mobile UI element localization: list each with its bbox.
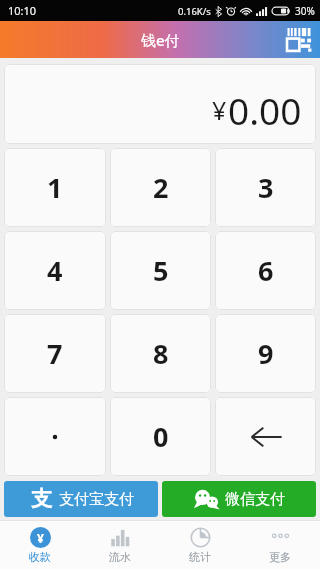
staticText: 流水	[109, 550, 131, 564]
button[interactable]: Scan QR code	[284, 25, 314, 55]
button[interactable]: 9	[215, 314, 316, 393]
button[interactable]: 0	[110, 397, 211, 476]
staticText: 支	[31, 486, 52, 512]
button[interactable]	[4, 397, 106, 476]
button[interactable]: ¥	[0, 521, 80, 569]
button[interactable]: 1	[4, 148, 106, 227]
staticText: 6	[258, 252, 274, 289]
staticText: 收款	[29, 550, 51, 564]
staticText: 钱e付	[141, 30, 180, 50]
button[interactable]: 4	[4, 231, 106, 310]
button[interactable]: 7	[4, 314, 106, 393]
staticText: 1	[47, 169, 63, 206]
staticText: ¥	[37, 530, 44, 546]
staticText: 8	[153, 335, 169, 372]
button[interactable]: 流水	[80, 521, 160, 569]
button[interactable]: 8	[110, 314, 211, 393]
staticText: 0	[153, 418, 169, 455]
button[interactable]: Backspace	[215, 397, 316, 476]
staticText: 0.16K/s	[178, 5, 211, 18]
staticText: 5	[153, 252, 169, 289]
staticText: 10:10	[8, 3, 37, 18]
button[interactable]: 6	[215, 231, 316, 310]
staticText: 支付宝支付	[59, 490, 134, 509]
button[interactable]: 3	[215, 148, 316, 227]
staticText: ¥	[212, 93, 227, 127]
staticText: 统计	[189, 550, 211, 564]
button[interactable]: 2	[110, 148, 211, 227]
staticText: 4	[47, 252, 63, 289]
staticText: 微信支付	[225, 490, 285, 509]
staticText: 3	[258, 169, 274, 206]
button[interactable]: 更多	[240, 521, 320, 569]
button[interactable]: 统计	[160, 521, 240, 569]
button[interactable]: 微信支付	[162, 481, 316, 517]
button[interactable]: 5	[110, 231, 211, 310]
staticText: 30%	[295, 4, 315, 18]
staticText: 更多	[269, 550, 291, 564]
staticText: 9	[258, 335, 274, 372]
button[interactable]: 支	[4, 481, 158, 517]
staticText: 2	[153, 169, 169, 206]
staticText: 0.00	[228, 85, 302, 135]
staticText: 7	[47, 335, 63, 372]
button[interactable]: ¥	[4, 64, 316, 144]
